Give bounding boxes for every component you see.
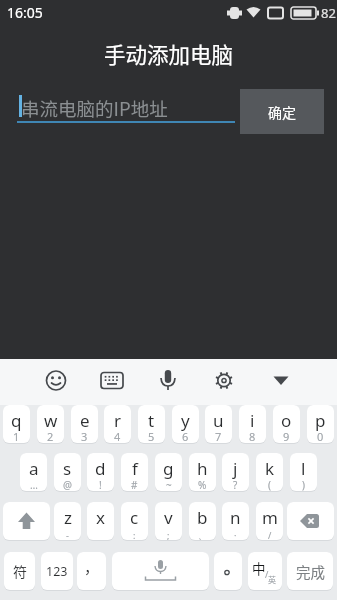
button[interactable] (205, 361, 245, 403)
staticText: ) (302, 478, 305, 491)
staticText: m (262, 506, 278, 529)
staticText: k (265, 457, 275, 480)
button[interactable]: c (121, 502, 148, 540)
staticText: / (265, 568, 269, 580)
button[interactable]: a (20, 453, 47, 491)
staticText: f (132, 457, 138, 480)
staticText: v (164, 506, 173, 529)
button[interactable]: j (222, 453, 249, 491)
button[interactable] (287, 502, 334, 540)
staticText: … (30, 478, 38, 491)
staticText: r (114, 409, 122, 432)
staticText: / (268, 529, 272, 540)
button[interactable]: r (104, 405, 131, 443)
staticText: 16:05 (7, 3, 43, 22)
staticText: 中 (252, 558, 266, 578)
staticText: a (29, 457, 39, 480)
staticText: · (234, 529, 237, 540)
staticText: 手动添加电脑 (104, 38, 234, 69)
button[interactable]: z (54, 502, 81, 540)
staticText: ! (99, 478, 102, 491)
staticText: 0 (317, 429, 324, 443)
button[interactable] (261, 361, 301, 403)
staticText: n (230, 506, 241, 529)
staticText: ( (268, 478, 271, 491)
button[interactable]: y (172, 405, 199, 443)
staticText: y (181, 409, 190, 432)
button[interactable]: e (71, 405, 98, 443)
button[interactable]: q (3, 405, 30, 443)
button[interactable] (214, 552, 242, 590)
button[interactable]: n (222, 502, 249, 540)
button[interactable]: d (87, 453, 114, 491)
button[interactable]: 完成 (287, 552, 333, 590)
staticText: p (315, 409, 326, 432)
button[interactable]: 123 (41, 552, 73, 590)
button[interactable]: m (256, 502, 283, 540)
staticText: # (131, 478, 138, 491)
staticText: 符 (13, 561, 27, 581)
staticText: u (213, 409, 224, 432)
staticText: % (198, 478, 207, 491)
button[interactable]: 中 (248, 552, 282, 590)
button[interactable] (112, 552, 209, 590)
button[interactable]: f (121, 453, 148, 491)
button[interactable]: v (155, 502, 182, 540)
staticText: 4 (114, 429, 121, 443)
button[interactable]: ， (77, 552, 106, 590)
button[interactable] (148, 361, 188, 403)
staticText: c (130, 506, 139, 529)
staticText: : (133, 529, 136, 540)
button[interactable]: i (239, 405, 266, 443)
button[interactable] (92, 361, 132, 403)
staticText: ; (167, 529, 170, 540)
staticText: - (66, 529, 69, 540)
staticText: ~ (166, 478, 172, 491)
button[interactable]: g (155, 453, 182, 491)
staticText: 7 (215, 429, 222, 443)
staticText: 3 (81, 429, 88, 443)
button[interactable] (36, 361, 76, 403)
button[interactable]: 符 (4, 552, 35, 590)
staticText: o (281, 409, 292, 432)
staticText: ， (84, 556, 100, 578)
button[interactable]: u (205, 405, 232, 443)
staticText: e (80, 409, 90, 432)
button[interactable]: p (307, 405, 334, 443)
staticText: 6 (182, 429, 189, 443)
staticText: 、 (198, 530, 207, 540)
staticText: 1 (13, 429, 20, 443)
staticText: 82 (321, 4, 336, 22)
button[interactable]: s (54, 453, 81, 491)
button[interactable]: w (37, 405, 64, 443)
staticText: x (96, 506, 105, 529)
staticText: 串流电脑的IP地址 (21, 95, 168, 122)
button[interactable]: 确定 (240, 89, 324, 134)
button[interactable]: x (87, 502, 114, 540)
button[interactable]: k (256, 453, 283, 491)
staticText: @ (63, 478, 72, 491)
staticText: h (197, 457, 208, 480)
staticText: b (197, 506, 208, 529)
button[interactable]: t (138, 405, 165, 443)
button[interactable] (3, 502, 50, 540)
staticText: 确定 (268, 102, 296, 122)
button[interactable]: l (290, 453, 317, 491)
staticText: q (11, 409, 22, 432)
button[interactable]: o (273, 405, 300, 443)
staticText: 2 (47, 429, 54, 443)
staticText: w (44, 409, 58, 432)
staticText: ? (233, 478, 238, 491)
button[interactable]: h (189, 453, 216, 491)
staticText: d (95, 457, 106, 480)
button[interactable]: b (189, 502, 216, 540)
staticText: 5 (148, 429, 155, 443)
staticText: 完成 (296, 561, 325, 582)
staticText: g (163, 457, 174, 480)
staticText: 123 (46, 563, 68, 580)
staticText: 英 (268, 574, 276, 586)
staticText: j (233, 457, 238, 480)
staticText: l (301, 457, 306, 480)
staticText: 9 (283, 429, 290, 443)
